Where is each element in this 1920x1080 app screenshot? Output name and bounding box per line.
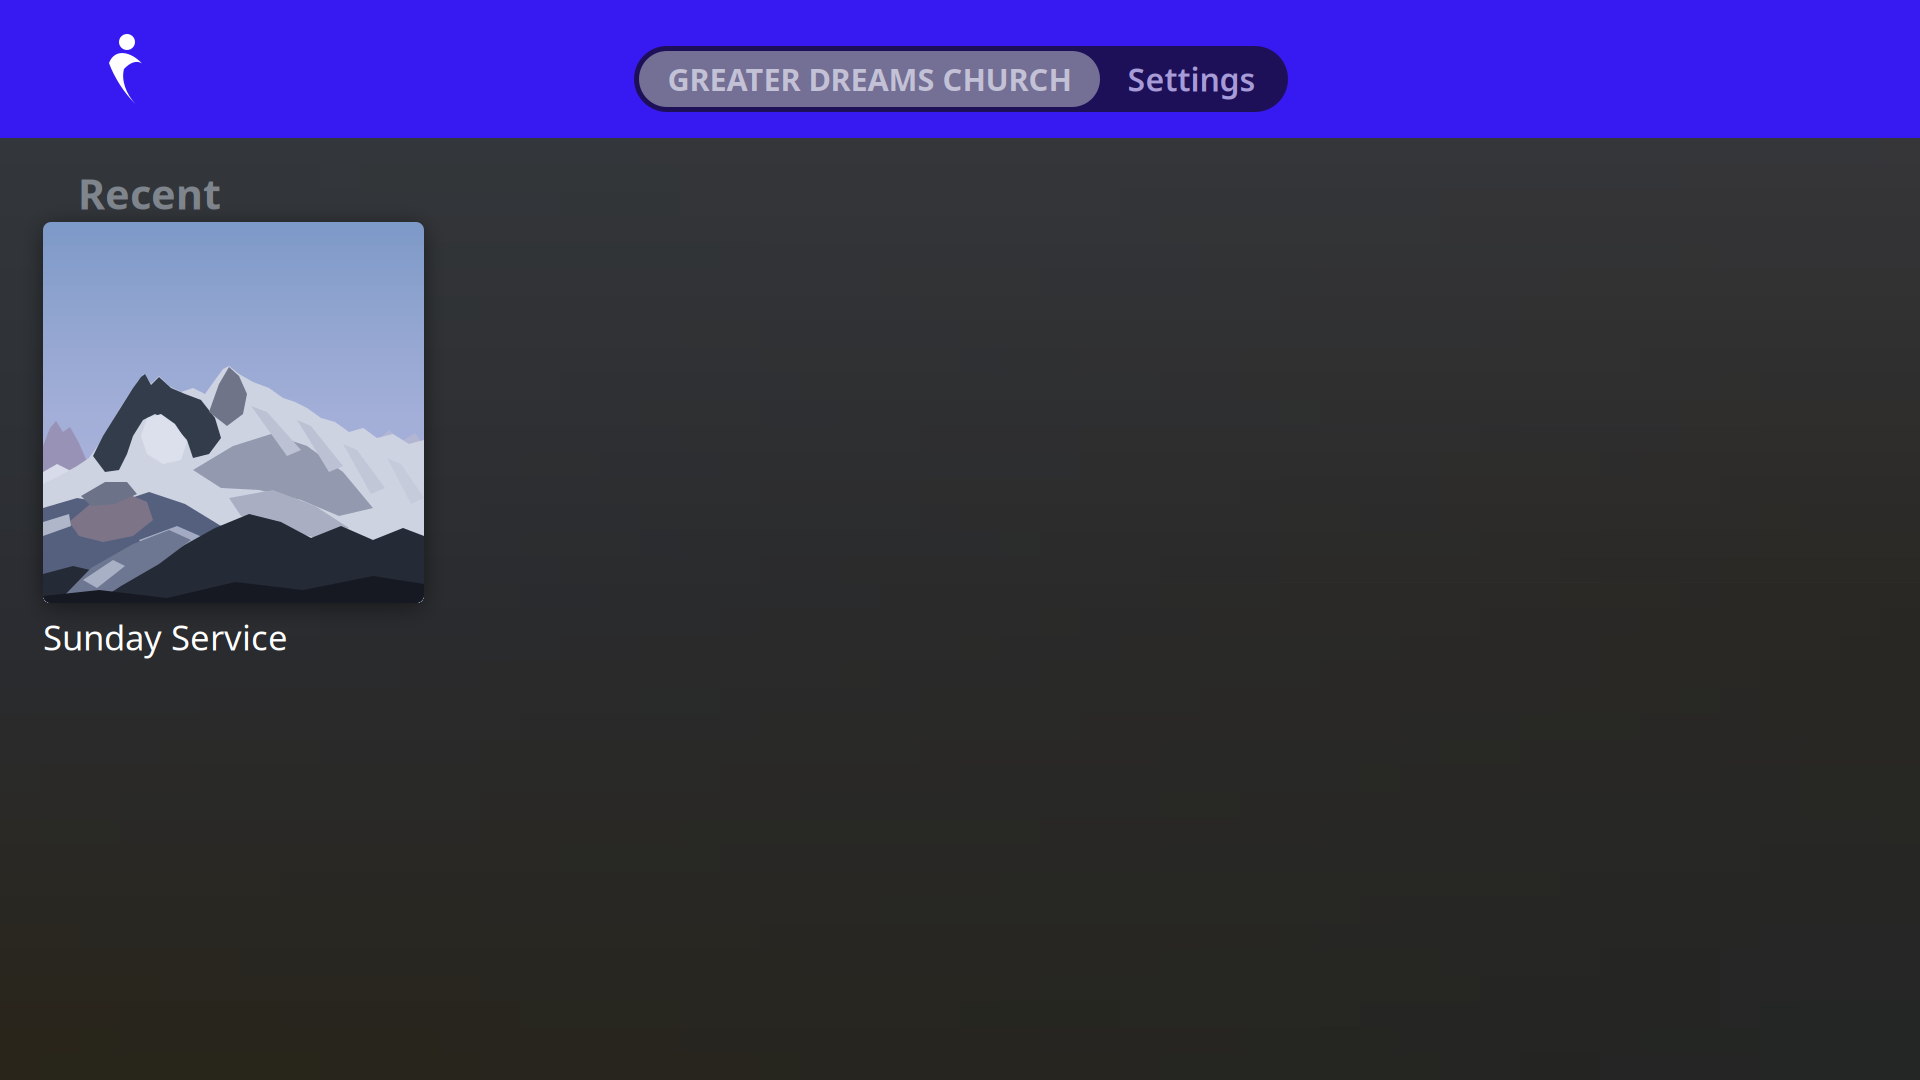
button[interactable]: GREATER DREAMS CHURCH xyxy=(639,51,1100,107)
button[interactable]: Greater Dreams Church home xyxy=(98,25,148,107)
staticText: Recent xyxy=(78,166,221,221)
staticText: Sunday Service xyxy=(43,614,288,660)
staticText: GREATER DREAMS CHURCH xyxy=(667,59,1071,99)
staticText: Settings xyxy=(1127,58,1255,100)
button[interactable]: Sunday Service xyxy=(43,222,424,660)
button[interactable]: Settings xyxy=(1100,51,1283,107)
